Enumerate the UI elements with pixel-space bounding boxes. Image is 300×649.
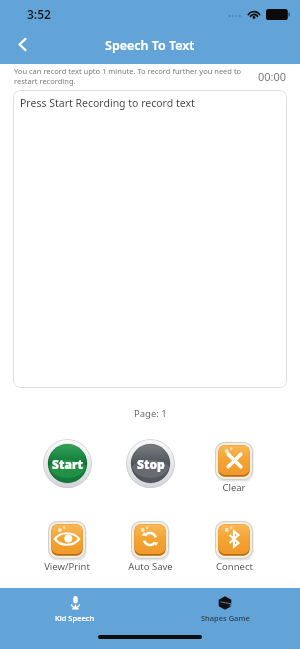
button[interactable]: Start [43, 439, 92, 488]
staticText: 00:00 [258, 69, 287, 84]
button[interactable]: Shapes Game [150, 588, 300, 623]
staticText: Speech To Text [105, 37, 195, 54]
button[interactable]: Clear [194, 442, 274, 494]
staticText: You can record text upto 1 minute. To re… [14, 66, 252, 86]
button[interactable]: View/Print [27, 521, 107, 573]
staticText: Auto Save [128, 560, 173, 573]
staticText: Press Start Recording to record text [20, 96, 195, 110]
button[interactable]: Auto Save [110, 521, 190, 573]
staticText: Shapes Game [201, 613, 250, 623]
staticText: Start [52, 456, 84, 472]
button[interactable]: Stop [126, 439, 175, 488]
button[interactable]: Back [6, 28, 38, 60]
staticText: View/Print [44, 560, 90, 573]
button[interactable]: Kid Speech [0, 588, 150, 623]
staticText: Page: 1 [134, 407, 167, 420]
staticText: Kid Speech [55, 613, 95, 623]
staticText: Clear [222, 481, 246, 494]
button[interactable]: Press Start Recording to record text [13, 90, 287, 388]
staticText: Stop [137, 456, 165, 472]
button[interactable]: Connect [194, 521, 274, 573]
staticText: 3:52 [27, 6, 51, 22]
staticText: Connect [216, 560, 253, 573]
